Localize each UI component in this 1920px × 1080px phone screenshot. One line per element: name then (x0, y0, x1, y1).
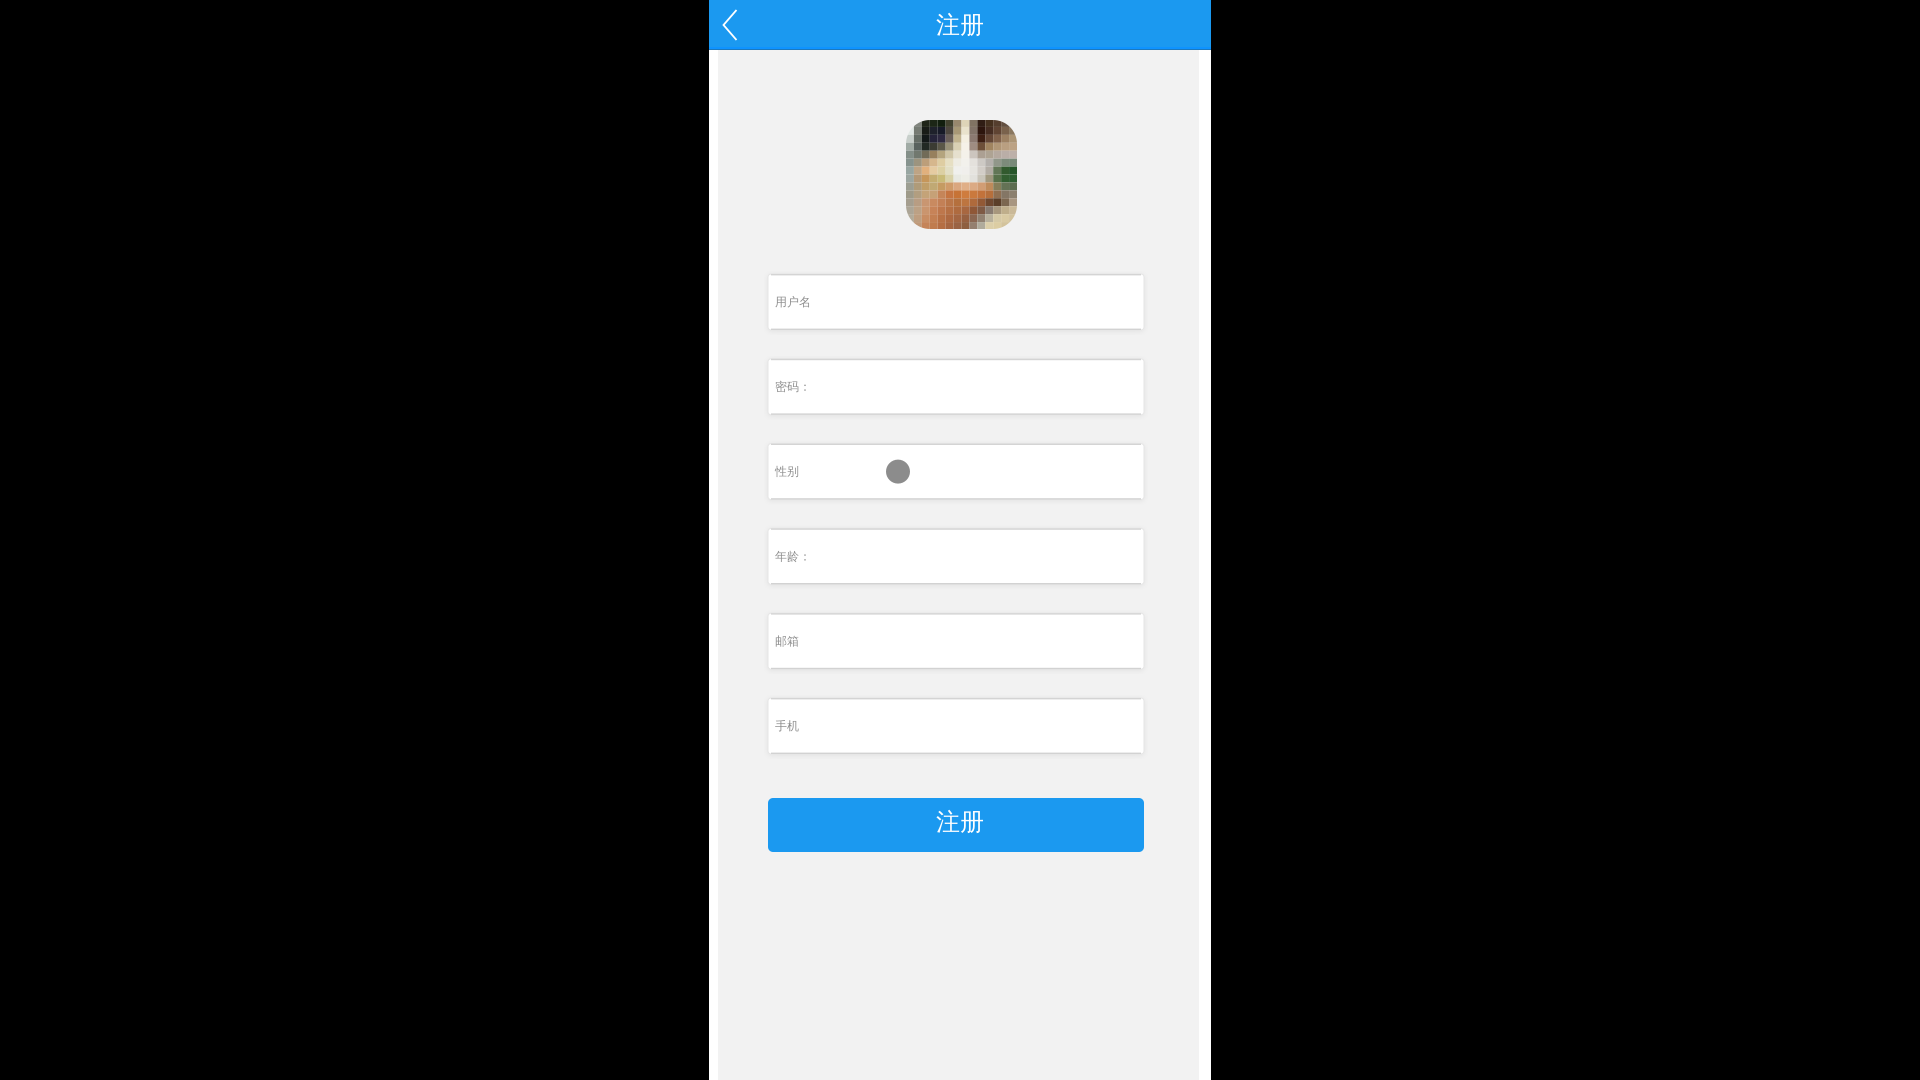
staticText: 用户名 (775, 295, 811, 309)
staticText: 手机 (775, 719, 799, 733)
staticText: 密码： (775, 379, 811, 394)
staticText: 性别 (775, 464, 799, 479)
staticText: 邮箱 (775, 634, 799, 648)
staticText: 年龄： (775, 549, 811, 564)
button[interactable]: Back (709, 0, 751, 50)
button[interactable]: 注册 (768, 798, 1144, 852)
staticText: 注册 (936, 10, 984, 40)
staticText: 注册 (936, 807, 984, 837)
